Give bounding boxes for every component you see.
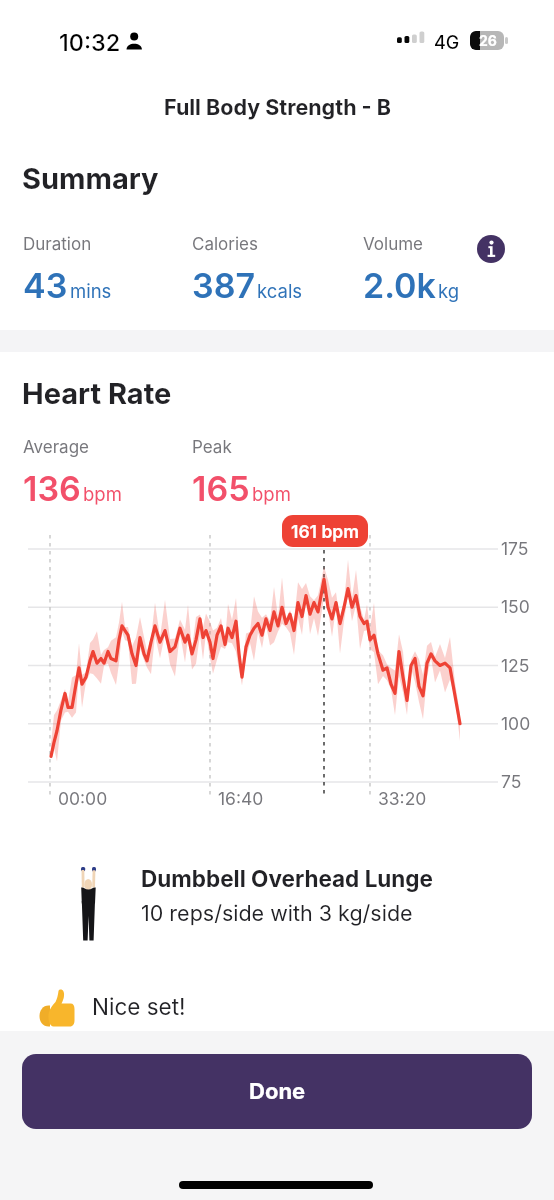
staticText: Heart Rate	[22, 376, 172, 411]
staticText: Average	[23, 437, 89, 458]
staticText: 165	[192, 468, 250, 509]
staticText: 161 bpm	[291, 521, 360, 542]
staticText: 16:40	[218, 788, 264, 809]
staticText: kg	[438, 280, 460, 302]
staticText: Duration	[23, 234, 92, 255]
staticText: 75	[501, 771, 522, 792]
staticText: Peak	[192, 437, 232, 458]
staticText: mins	[70, 280, 112, 302]
staticText: 4G	[434, 32, 460, 54]
button[interactable]: Info	[477, 235, 505, 263]
staticText: Nice set!	[92, 993, 186, 1020]
staticText: Volume	[363, 234, 424, 255]
staticText: 10 reps/side with 3 kg/side	[141, 900, 413, 926]
staticText: Dumbbell Overhead Lunge	[141, 865, 433, 892]
staticText: 136	[23, 468, 81, 509]
staticText: 10:32	[59, 28, 121, 56]
staticText: Full Body Strength - B	[164, 94, 391, 120]
button[interactable]: Done	[22, 1054, 532, 1129]
staticText: 175	[501, 538, 529, 559]
staticText: Done	[249, 1078, 306, 1105]
staticText: 33:20	[378, 788, 427, 809]
staticText: 00:00	[58, 788, 108, 809]
staticText: bpm	[252, 483, 291, 505]
staticText: 2.0k	[363, 265, 436, 306]
staticText: Calories	[192, 234, 258, 255]
staticText: bpm	[83, 483, 122, 505]
staticText: 150	[501, 596, 530, 617]
staticText: kcals	[257, 280, 303, 302]
staticText: 26	[479, 32, 497, 49]
staticText: 387	[192, 265, 255, 306]
staticText: 125	[501, 655, 530, 676]
staticText: 43	[23, 265, 68, 306]
staticText: Summary	[22, 161, 159, 196]
staticText: 100	[501, 713, 531, 734]
